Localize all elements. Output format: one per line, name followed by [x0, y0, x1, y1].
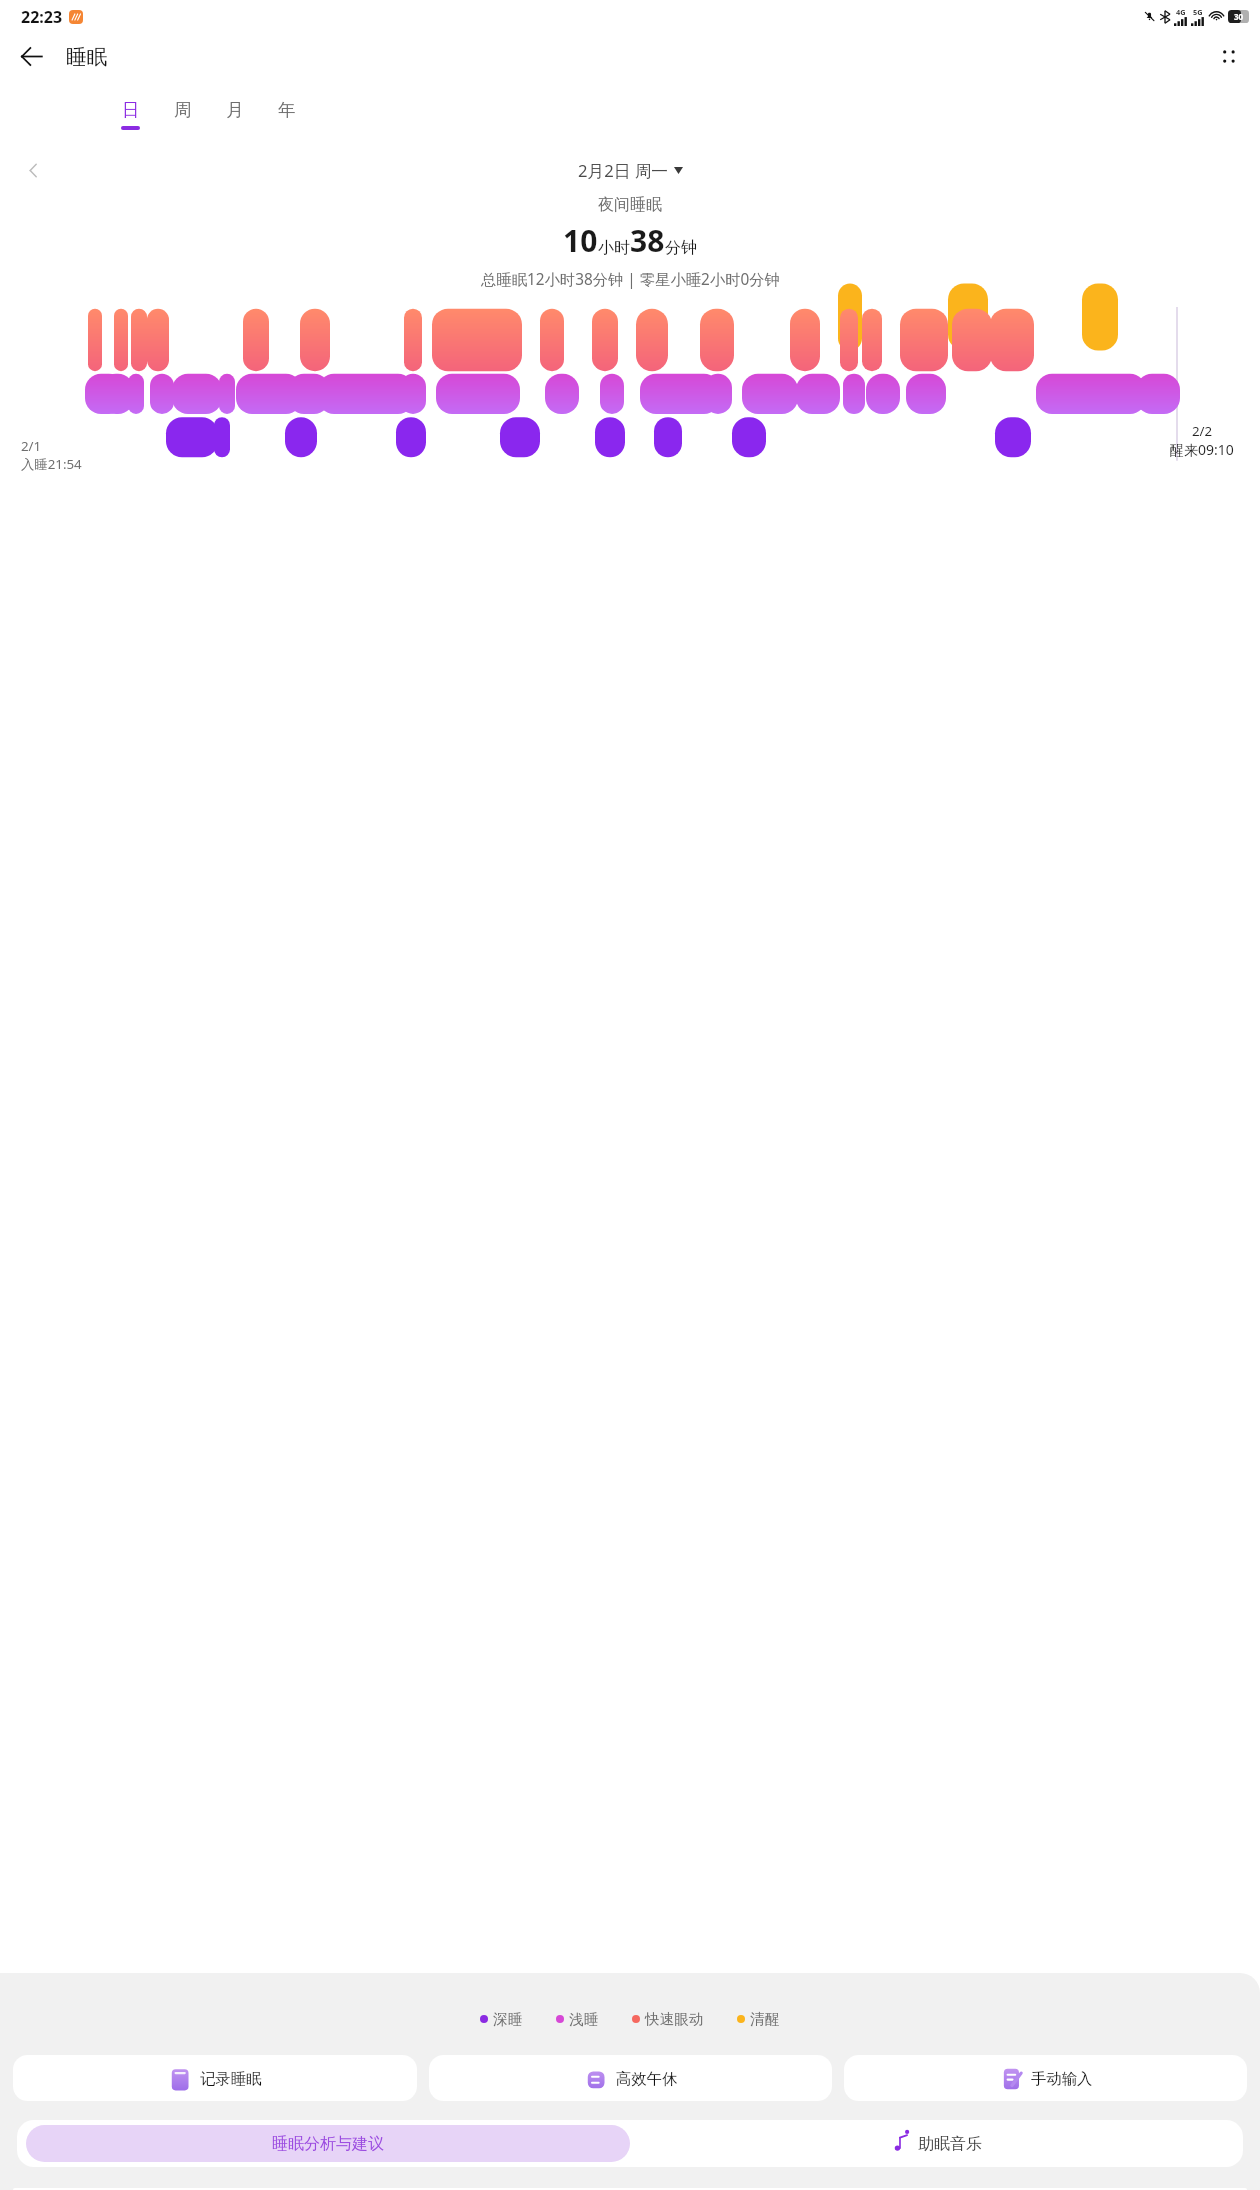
button[interactable]: More options — [1210, 38, 1247, 75]
staticText: 分钟 — [665, 238, 697, 258]
button[interactable]: 2月2日 周一 — [578, 159, 683, 182]
button[interactable]: 睡眠分析与建议 — [26, 2125, 630, 2162]
staticText: 手动输入 — [1031, 2069, 1093, 2088]
staticText: 睡眠分析与建议 — [272, 2134, 384, 2154]
button[interactable]: 高效午休 — [429, 2055, 832, 2101]
staticText: 睡眠 — [66, 44, 108, 70]
staticText: 38 — [630, 220, 665, 261]
button[interactable]: 手动输入 — [844, 2055, 1247, 2101]
staticText: 2/2 — [1192, 422, 1213, 440]
staticText: 5G — [1193, 7, 1203, 17]
staticText: 22:23 — [21, 6, 63, 28]
staticText: 周 — [174, 99, 192, 121]
button[interactable]: 月 — [215, 99, 254, 136]
staticText: 月 — [226, 99, 244, 121]
staticText: 助眠音乐 — [918, 2134, 982, 2154]
button[interactable]: 年 — [267, 99, 306, 136]
staticText: 小时 — [598, 238, 630, 258]
staticText: 浅睡 — [569, 2010, 599, 2028]
button[interactable]: 日 — [111, 99, 150, 136]
staticText: 日 — [122, 99, 140, 121]
staticText: 入睡21:54 — [21, 455, 82, 473]
staticText: 清醒 — [750, 2010, 780, 2028]
staticText: 10 — [563, 220, 598, 261]
staticText: 记录睡眠 — [200, 2069, 262, 2088]
staticText: 深睡 — [493, 2010, 523, 2028]
staticText: 30 — [1234, 11, 1244, 22]
staticText: 夜间睡眠 — [598, 195, 662, 215]
button[interactable]: 记录睡眠 — [13, 2055, 417, 2101]
staticText: 2月2日 周一 — [578, 159, 669, 182]
button[interactable]: 助眠音乐 — [630, 2120, 1243, 2167]
staticText: 年 — [278, 99, 296, 121]
staticText: 快速眼动 — [645, 2010, 704, 2028]
staticText: 高效午休 — [616, 2069, 678, 2088]
button[interactable]: Previous day — [20, 157, 47, 184]
staticText: 2/1 — [21, 437, 42, 455]
staticText: 醒来09:10 — [1170, 440, 1234, 459]
button[interactable]: Back — [13, 38, 50, 75]
staticText: 总睡眠12小时38分钟 | 零星小睡2小时0分钟 — [481, 269, 780, 290]
staticText: 4G — [1176, 7, 1186, 17]
button[interactable]: 周 — [163, 99, 202, 136]
